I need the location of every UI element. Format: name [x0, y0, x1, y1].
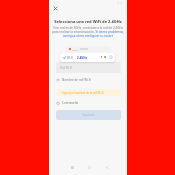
- staticText: Selecciona una red WiFi de 2.4GHz: [49, 19, 127, 24]
- button[interactable]: Inicio: [85, 163, 93, 171]
- button[interactable]: Siguiente: [56, 110, 121, 120]
- staticText: 2.4GHz: [77, 56, 87, 60]
- button[interactable]: Red Wi-Fi: [56, 62, 121, 73]
- staticText: Ingresa el nombre de la red Wi-Fi: [62, 91, 104, 95]
- button[interactable]: Contraseña: [56, 99, 121, 107]
- button[interactable]: Nombre de red Wi-Fi: [56, 76, 121, 84]
- staticText: Wi-Fi: [72, 48, 78, 51]
- button[interactable]: Cerrar: [52, 5, 59, 12]
- staticText: Wi-Fi: [67, 56, 73, 60]
- button[interactable]: Atrás: [103, 163, 111, 171]
- staticText: Nombre de red Wi-Fi: [62, 78, 92, 82]
- staticText: Siguiente: [82, 113, 96, 117]
- button[interactable]: Wi-Fi: [60, 53, 115, 62]
- button[interactable]: Recientes: [68, 163, 76, 171]
- staticText: ● ▮: [117, 1, 123, 5]
- button[interactable]: Wi-Fi: [65, 46, 111, 52]
- staticText: 9:41: [53, 1, 59, 5]
- staticText: Si tu red es de 5GHz, conéctate a la red…: [52, 26, 124, 38]
- staticText: Red Wi-Fi: [60, 66, 73, 70]
- staticText: Contraseña: [62, 101, 79, 105]
